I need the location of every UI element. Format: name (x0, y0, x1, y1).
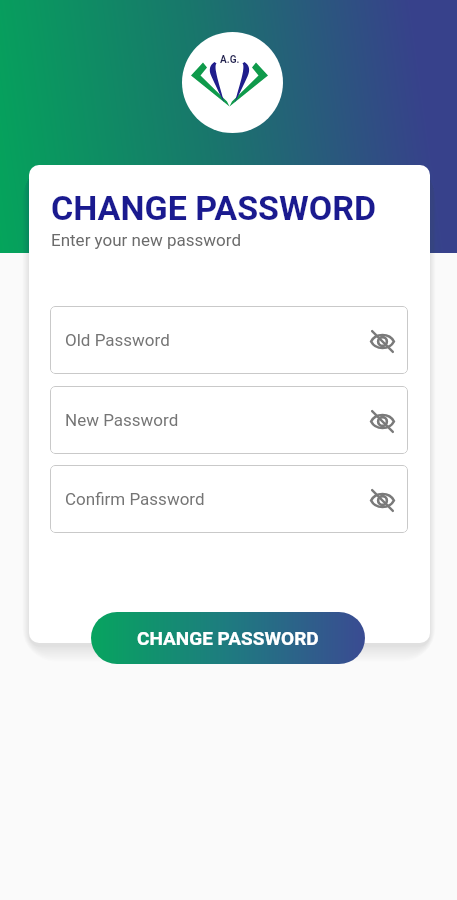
button[interactable]: CHANGE PASSWORD (91, 612, 365, 664)
staticText: Enter your new password (51, 230, 241, 250)
button[interactable]: Show password (366, 404, 398, 436)
staticText: New Password (65, 410, 179, 430)
staticText: Confirm Password (65, 489, 205, 509)
staticText: CHANGE PASSWORD (137, 627, 319, 649)
button[interactable]: Show password (366, 324, 398, 356)
staticText: Old Password (65, 330, 170, 350)
button[interactable]: Confirm Password (50, 465, 408, 533)
button[interactable]: Old Password (50, 306, 408, 374)
button[interactable]: New Password (50, 386, 408, 454)
staticText: A.G. (220, 54, 240, 66)
staticText: CHANGE PASSWORD (51, 188, 376, 228)
button[interactable]: Show password (366, 483, 398, 515)
